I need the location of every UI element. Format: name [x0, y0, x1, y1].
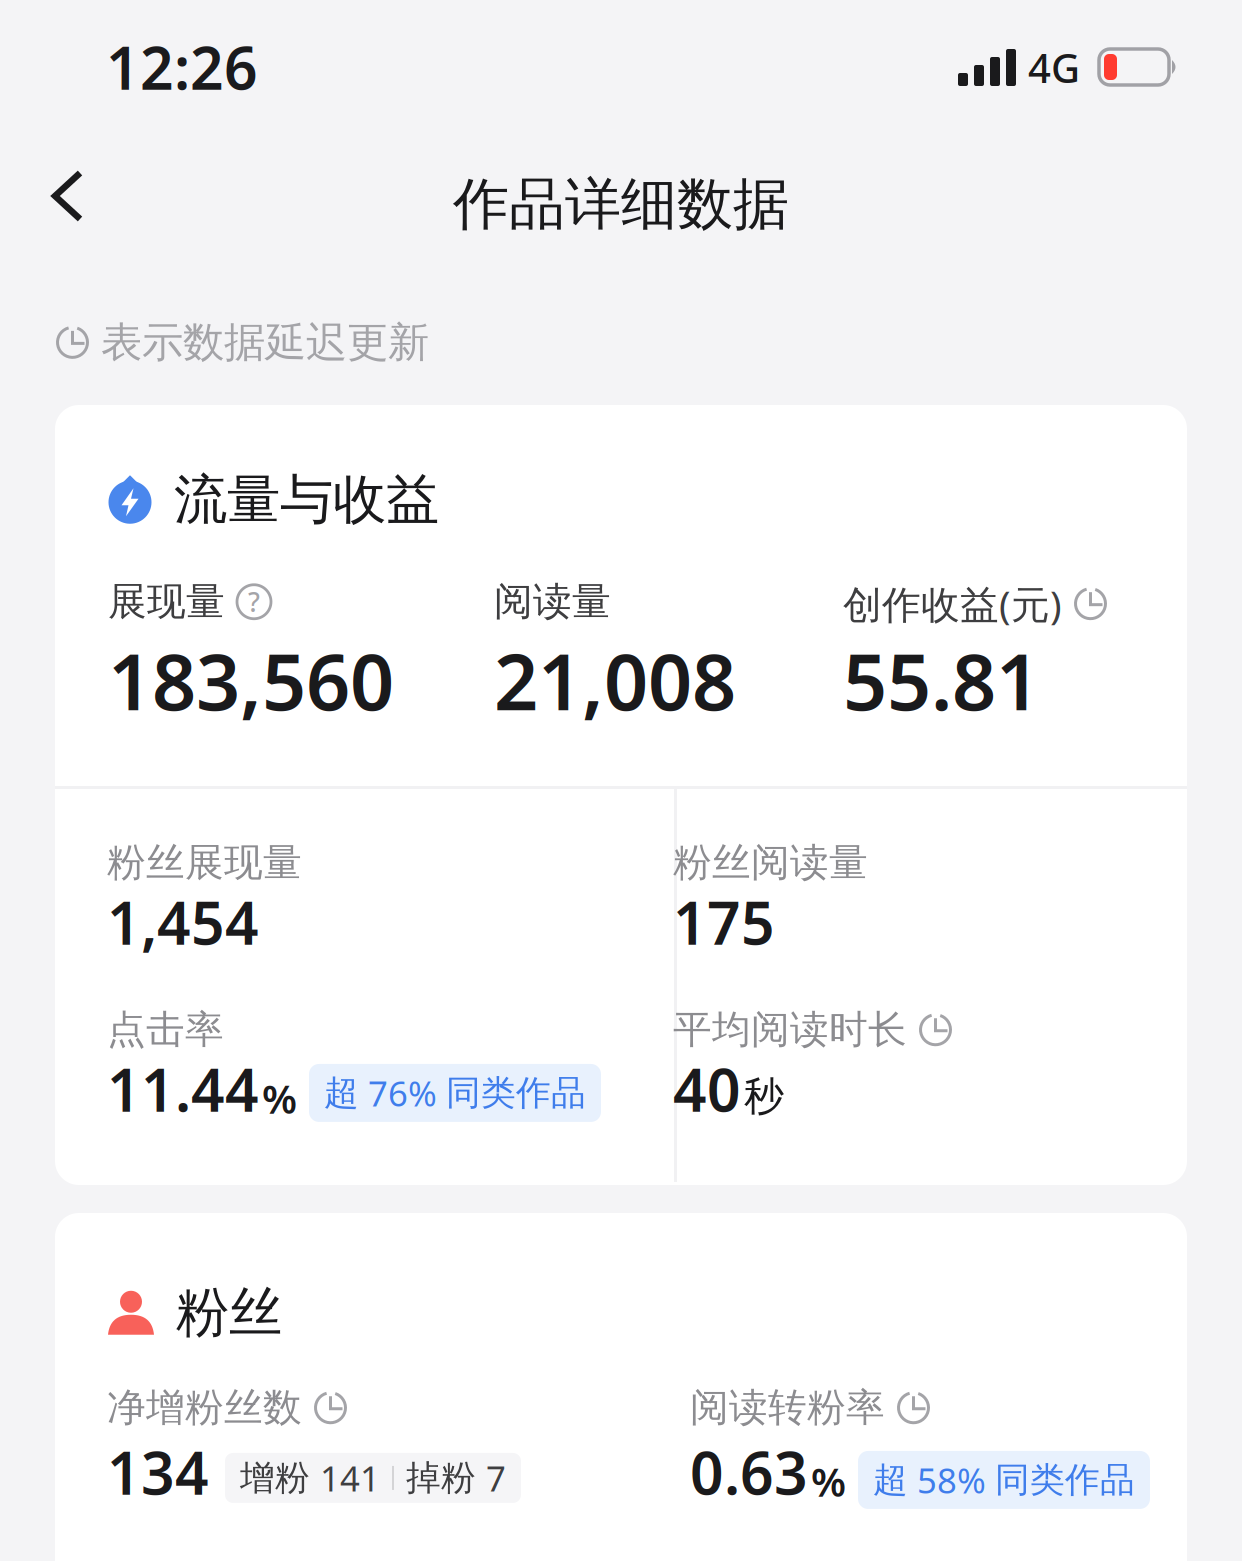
staticText: 55.81 [843, 629, 1040, 732]
staticText: 58% [917, 1457, 986, 1503]
staticText: 183,560 [108, 629, 394, 732]
staticText: 粉丝展现量 [107, 839, 302, 886]
staticText: 0.63 [690, 1433, 808, 1511]
staticText: 流量与收益 [174, 467, 439, 532]
staticText: 粉丝阅读量 [673, 839, 868, 886]
button[interactable]: Help [237, 585, 271, 619]
staticText: 11.44 [107, 1050, 259, 1128]
staticText: 阅读转粉率 [690, 1384, 885, 1431]
staticText: ? [248, 584, 260, 619]
staticText: 12:26 [106, 28, 258, 106]
staticText: 增粉 [240, 1457, 310, 1499]
staticText: 秒 [744, 1072, 784, 1121]
staticText: 4G [1028, 41, 1080, 94]
staticText: 超 [324, 1072, 359, 1114]
staticText: 21,008 [494, 629, 736, 732]
staticText: 76% [368, 1070, 437, 1116]
staticText: 同类作品 [446, 1072, 586, 1114]
staticText: 40 [673, 1050, 741, 1128]
staticText: % [811, 1455, 846, 1508]
staticText: 超 [873, 1459, 908, 1501]
staticText: 净增粉丝数 [107, 1384, 302, 1431]
staticText: 1,454 [107, 883, 259, 961]
staticText: 表示数据延迟更新 [101, 317, 429, 368]
staticText: 创作收益(元) [843, 578, 1062, 629]
staticText: 同类作品 [995, 1459, 1135, 1501]
staticText: 点击率 [107, 1006, 224, 1053]
staticText: 175 [673, 883, 775, 961]
staticText: 掉粉 [406, 1457, 476, 1499]
staticText: 7 [486, 1455, 506, 1501]
staticText: 134 [107, 1433, 209, 1511]
button[interactable]: Back [0, 156, 124, 236]
staticText: % [262, 1072, 297, 1125]
staticText: 141 [320, 1455, 380, 1501]
staticText: 阅读量 [494, 578, 611, 625]
staticText: 作品详细数据 [453, 170, 789, 239]
staticText: 粉丝 [176, 1280, 282, 1345]
staticText: 展现量 [108, 578, 225, 625]
staticText: 平均阅读时长 [673, 1006, 907, 1053]
